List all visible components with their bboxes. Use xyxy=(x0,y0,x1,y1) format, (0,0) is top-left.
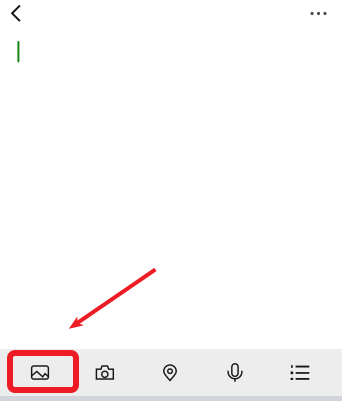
button[interactable]: Photos xyxy=(7,349,72,396)
button[interactable]: Location xyxy=(137,349,202,396)
button[interactable]: More xyxy=(302,0,334,27)
button[interactable]: List xyxy=(267,349,332,396)
button[interactable]: Back xyxy=(1,0,31,27)
button[interactable]: Voice input xyxy=(202,349,267,396)
button[interactable]: Camera xyxy=(72,349,137,396)
